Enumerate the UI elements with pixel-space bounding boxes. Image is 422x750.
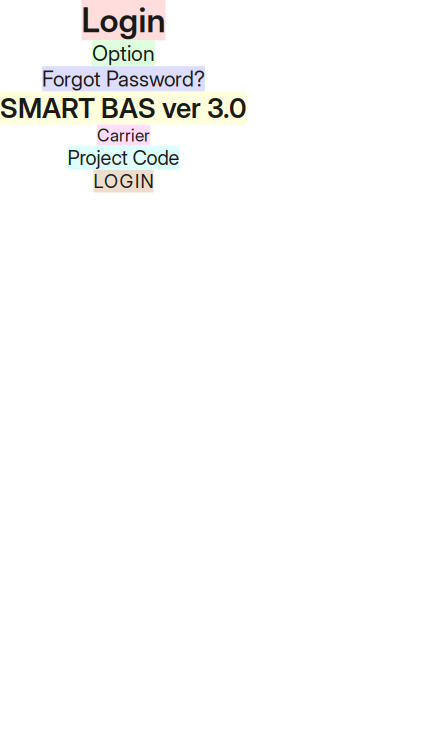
staticText: LOGIN xyxy=(93,170,153,192)
staticText: Forgot Password? xyxy=(42,66,205,91)
staticText: SMART BAS ver 3.0 xyxy=(0,91,247,125)
staticText: Carrier xyxy=(97,125,150,146)
staticText: Option xyxy=(92,40,155,66)
staticText: Login xyxy=(81,0,165,40)
staticText: Project Code xyxy=(67,146,179,170)
